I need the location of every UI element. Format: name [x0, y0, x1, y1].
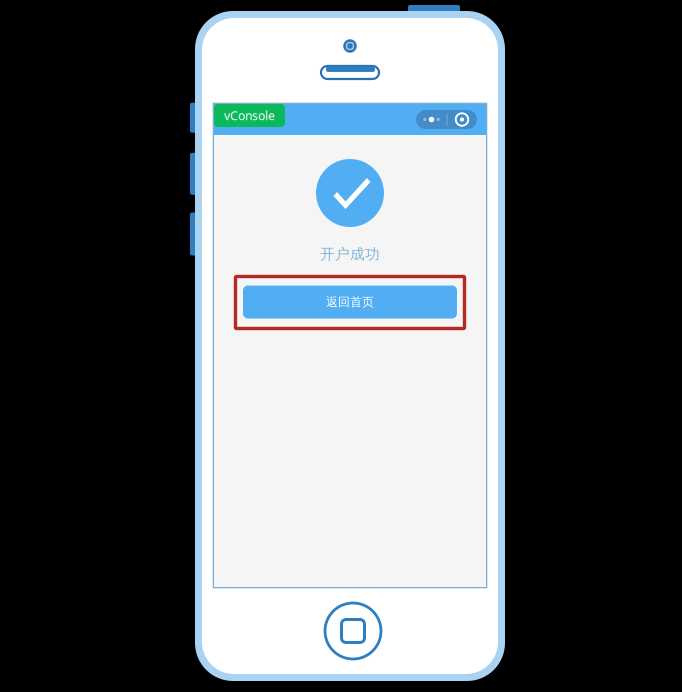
button[interactable]: Ring/Silent switch: [190, 103, 198, 133]
button[interactable]: Power: [408, 5, 460, 15]
button[interactable]: Close mini program: [447, 110, 477, 129]
button[interactable]: vConsole: [214, 104, 285, 127]
staticText: 开户成功: [320, 245, 380, 263]
button[interactable]: Volume down: [190, 212, 198, 255]
staticText: 返回首页: [326, 295, 374, 309]
button[interactable]: Volume up: [190, 153, 198, 195]
staticText: vConsole: [224, 107, 275, 123]
button[interactable]: 返回首页: [243, 285, 457, 318]
button[interactable]: Home: [322, 600, 384, 662]
button[interactable]: More: [416, 110, 447, 129]
